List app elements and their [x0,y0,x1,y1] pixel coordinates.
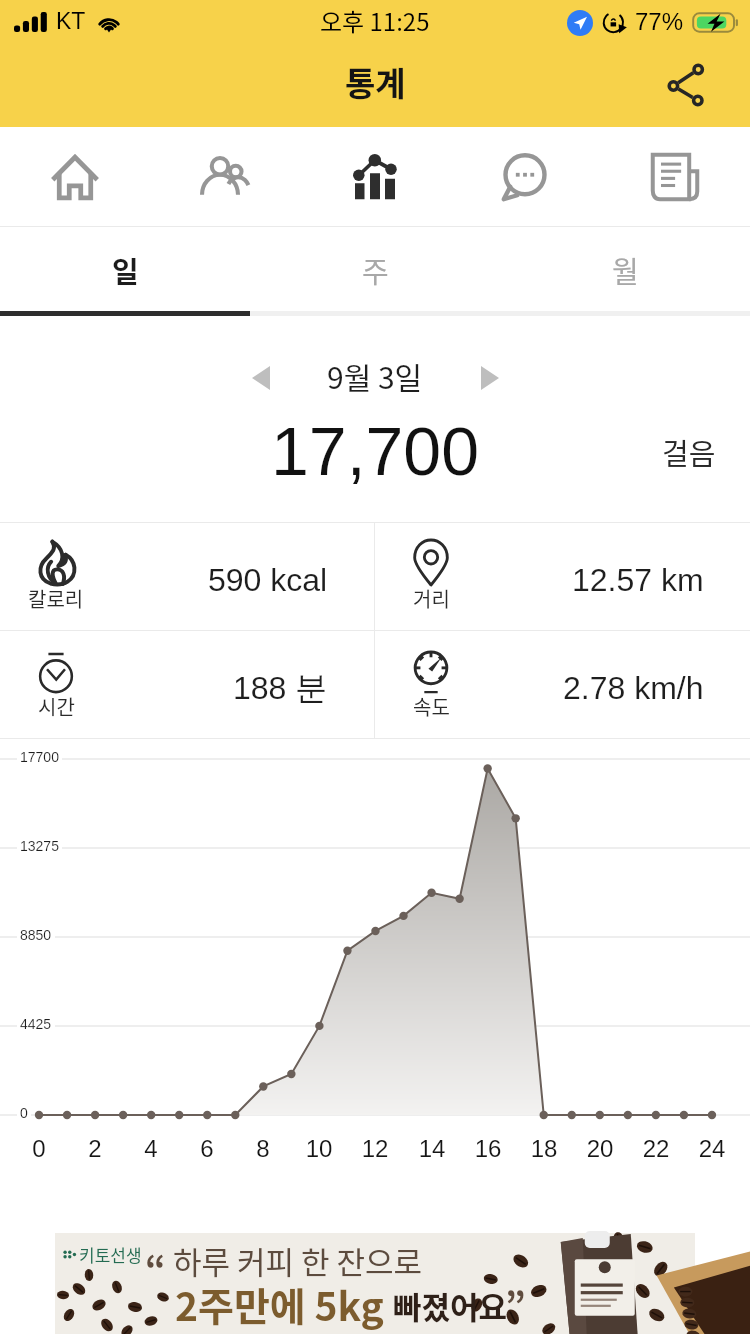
button[interactable]: Chat [450,127,600,226]
button[interactable]: Share [656,58,712,114]
button[interactable]: Friends [150,127,300,226]
staticText: 8850 [20,927,52,943]
button[interactable]: Next day [462,350,518,406]
button[interactable]: 거리 [375,523,750,630]
staticText: 2주만에 5kg [175,1276,384,1332]
staticText: 10 [299,1135,339,1162]
button[interactable]: 속도 [375,631,750,738]
staticText: 8 [243,1135,283,1162]
button[interactable]: 주 [250,227,500,316]
staticText: 0 [20,1105,28,1121]
staticText: 9월 3일 [327,354,423,397]
staticText: 통계 [345,58,406,106]
button[interactable]: 칼로리 [0,523,374,630]
staticText: 칼로리 [28,584,84,613]
button[interactable]: 시간 [0,631,374,738]
staticText: KT [56,8,86,34]
staticText: 빠졌어요 [393,1283,508,1328]
staticText: 월 [612,249,639,291]
button[interactable]: News [600,127,750,226]
staticText: 2 [75,1135,115,1162]
button[interactable]: Statistics [300,127,450,226]
staticText: 14 [412,1135,452,1162]
staticText: 77% [635,8,684,35]
staticText: 속도 [413,692,450,721]
staticText: 키토선생 [79,1242,142,1267]
staticText: 17700 [20,749,59,765]
staticText: 일 [112,249,139,291]
staticText: 22 [636,1135,676,1162]
button[interactable]: Advertisement: 키토선생 butter coffee [55,1233,695,1334]
staticText: 6 [187,1135,227,1162]
staticText: 20 [580,1135,620,1162]
staticText: 오후 11:25 [320,3,430,38]
staticText: 주 [362,249,389,291]
staticText: 거리 [413,584,450,613]
staticText: 590 kcal [208,562,328,598]
button[interactable]: 월 [500,227,750,316]
staticText: 18 [524,1135,564,1162]
staticText: 17,700 [271,413,479,489]
staticText: 4 [131,1135,171,1162]
staticText: 걸음 [662,431,716,473]
staticText: 188 분 [233,668,328,708]
staticText: ” [505,1277,526,1329]
staticText: 13275 [20,838,59,854]
staticText: 하루 커피 한 잔으로 [173,1238,422,1283]
staticText: 4425 [20,1016,52,1032]
staticText: 16 [468,1135,508,1162]
staticText: 시간 [38,692,75,721]
staticText: 2.78 km/h [563,670,704,706]
staticText: “ [145,1240,166,1292]
staticText: 0 [19,1135,59,1162]
button[interactable]: 일 [0,227,250,316]
staticText: 24 [692,1135,732,1162]
staticText: 12.57 km [572,562,704,598]
button[interactable]: Previous day [233,350,289,406]
button[interactable]: Home [0,127,150,226]
staticText: 12 [355,1135,395,1162]
